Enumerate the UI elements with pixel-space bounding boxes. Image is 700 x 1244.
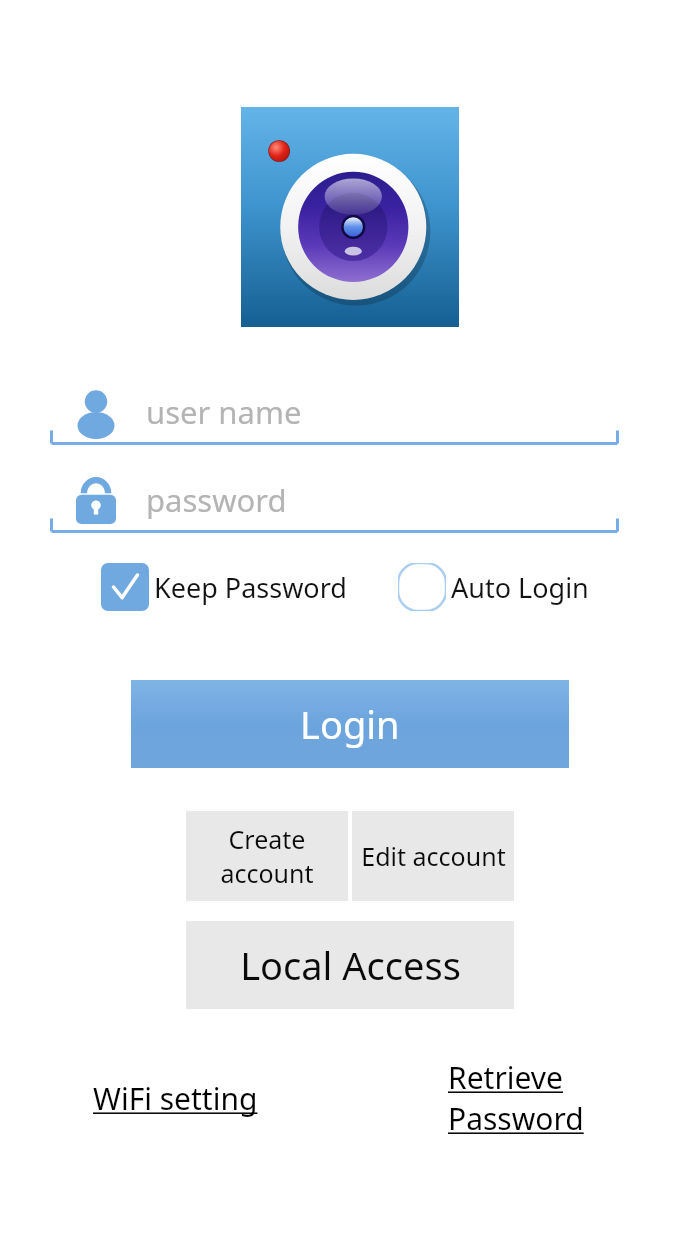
button[interactable]: user name bbox=[50, 379, 619, 445]
button[interactable]: Create account bbox=[186, 811, 348, 901]
button[interactable]: Retrieve Password bbox=[448, 1057, 700, 1139]
button[interactable]: Auto Login bbox=[398, 563, 589, 611]
staticText: Auto Login bbox=[451, 569, 589, 606]
staticText: password bbox=[146, 479, 287, 521]
staticText: Keep Password bbox=[154, 569, 347, 606]
button[interactable]: Keep Password bbox=[101, 563, 347, 611]
staticText: Create account bbox=[186, 822, 348, 890]
staticText: user name bbox=[146, 391, 302, 433]
staticText: Local Access bbox=[240, 939, 461, 991]
staticText: Retrieve Password bbox=[448, 1057, 700, 1139]
staticText: Login bbox=[300, 698, 400, 750]
button[interactable]: Login bbox=[131, 680, 569, 768]
button[interactable]: WiFi setting bbox=[93, 1078, 258, 1119]
button[interactable]: Local Access bbox=[186, 921, 514, 1009]
button[interactable]: password bbox=[50, 467, 619, 533]
staticText: Edit account bbox=[361, 839, 506, 873]
staticText: WiFi setting bbox=[93, 1078, 258, 1119]
button[interactable]: Edit account bbox=[352, 811, 514, 901]
